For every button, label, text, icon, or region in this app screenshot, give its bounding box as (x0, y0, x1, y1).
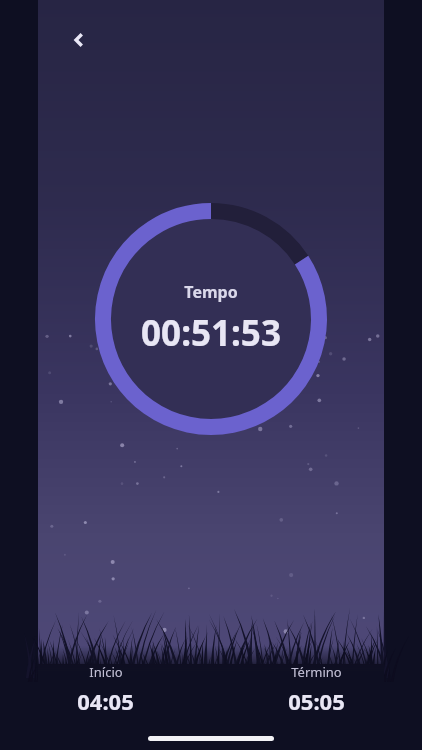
staticText: 05:05 (288, 686, 345, 716)
button[interactable]: Início (0, 659, 211, 720)
staticText: 04:05 (77, 686, 134, 716)
button[interactable]: Back (60, 20, 100, 60)
button[interactable]: Término (211, 659, 422, 720)
staticText: Início (89, 663, 123, 681)
staticText: Tempo (184, 281, 238, 303)
staticText: Término (291, 663, 342, 681)
staticText: 00:51:53 (141, 309, 281, 357)
